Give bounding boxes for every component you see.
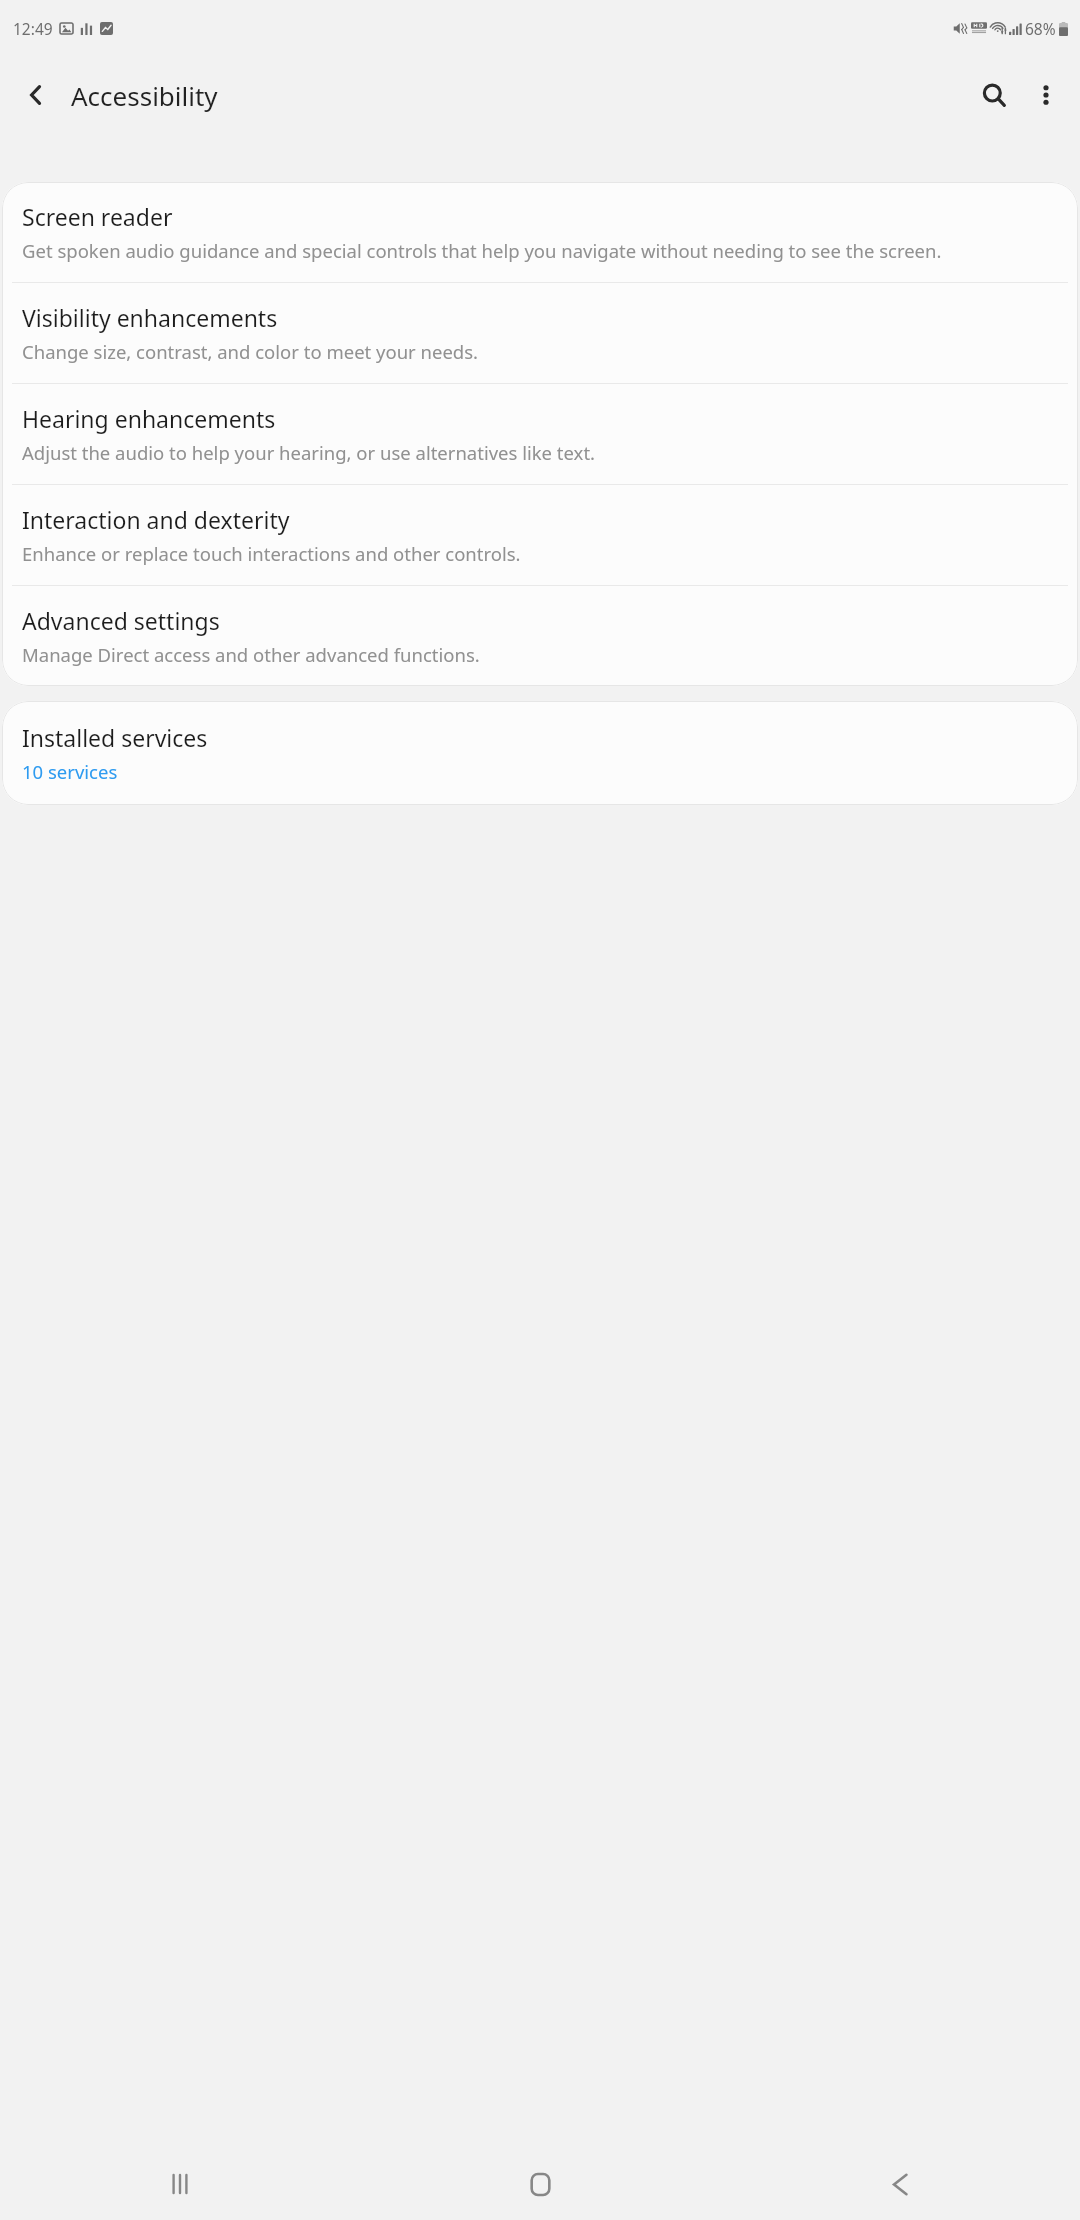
button[interactable]: Interaction and dexterity: [2, 485, 1078, 585]
staticText: Interaction and dexterity: [22, 504, 290, 535]
button[interactable]: Search: [968, 69, 1020, 121]
staticText: Advanced settings: [22, 605, 220, 636]
button[interactable]: Installed services: [2, 701, 1078, 805]
staticText: Hearing enhancements: [22, 403, 276, 434]
button[interactable]: Navigate up: [12, 71, 60, 119]
staticText: Accessibility: [71, 78, 218, 113]
staticText: Manage Direct access and other advanced …: [22, 642, 480, 667]
button[interactable]: Recents: [0, 2148, 360, 2220]
button[interactable]: Home: [360, 2148, 720, 2220]
staticText: Get spoken audio guidance and special co…: [22, 238, 942, 263]
button[interactable]: Hearing enhancements: [2, 384, 1078, 484]
staticText: Screen reader: [22, 201, 173, 232]
button[interactable]: Visibility enhancements: [2, 283, 1078, 383]
staticText: Change size, contrast, and color to meet…: [22, 339, 479, 364]
button[interactable]: Back: [720, 2148, 1080, 2220]
button[interactable]: More options: [1020, 69, 1072, 121]
staticText: Visibility enhancements: [22, 302, 278, 333]
staticText: Installed services: [22, 722, 208, 753]
staticText: Adjust the audio to help your hearing, o…: [22, 440, 596, 465]
staticText: 68%: [1025, 18, 1056, 39]
staticText: 10 services: [22, 759, 118, 784]
staticText: Enhance or replace touch interactions an…: [22, 541, 521, 566]
staticText: 12:49: [13, 18, 53, 39]
button[interactable]: Advanced settings: [2, 586, 1078, 686]
button[interactable]: Screen reader: [2, 182, 1078, 282]
